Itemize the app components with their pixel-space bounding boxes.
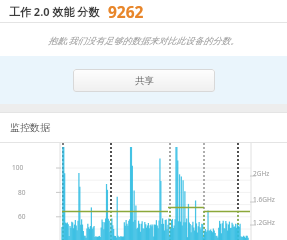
staticText: 60 xyxy=(18,212,26,221)
staticText: 抱歉,我们没有足够的数据来对比此设备的分数。 xyxy=(48,34,240,46)
button[interactable]: 监控数据 xyxy=(0,113,287,142)
staticText: 共享 xyxy=(135,75,154,87)
button[interactable]: 共享 xyxy=(73,69,215,92)
staticText: 2GHz xyxy=(253,169,270,178)
staticText: 9262 xyxy=(108,1,144,22)
staticText: 监控数据 xyxy=(10,121,50,134)
staticText: 100 xyxy=(12,163,24,172)
staticText: 80 xyxy=(18,188,26,197)
staticText: 1.6GHz xyxy=(253,195,275,204)
staticText: 1.2GHz xyxy=(253,218,275,227)
staticText: 工作 2.0 效能 分数 xyxy=(9,4,100,19)
